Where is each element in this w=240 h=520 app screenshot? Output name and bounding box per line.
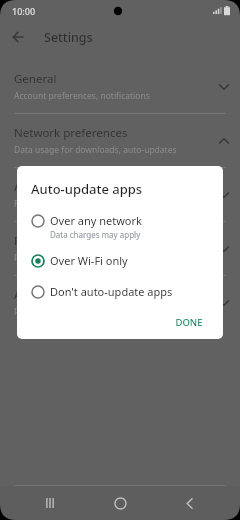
staticText: Network preferences [14,125,128,141]
button[interactable]: Don't auto-update apps [31,279,211,304]
button[interactable]: Over any network [31,208,211,245]
button[interactable]: Back [6,25,30,49]
staticText: Account preferences, notifications [14,90,150,102]
staticText: About [14,287,47,303]
staticText: Auto-update apps [31,180,143,198]
staticText: Parental control, parent guide [14,252,134,264]
staticText: Fingerprint, purchase authentication [14,198,161,210]
button[interactable]: Back [170,486,210,520]
staticText: 10:00 [12,5,36,17]
button[interactable]: Home [100,486,140,520]
button[interactable]: DONE [167,312,211,333]
staticText: General [14,71,57,87]
button[interactable]: Network preferences [0,114,240,167]
button[interactable]: Over Wi-Fi only [31,248,211,273]
staticText: Settings [44,29,93,46]
button[interactable]: Recents [30,486,70,520]
staticText: Over any network [50,213,142,228]
staticText: Authentication [14,179,94,195]
staticText: Play Store, build version, device certif… [14,306,189,318]
staticText: Family [14,233,49,249]
staticText: Data charges may apply [50,229,141,240]
button[interactable]: Family [0,222,240,275]
button[interactable]: About [0,276,240,329]
staticText: DONE [175,316,203,329]
button[interactable]: Authentication [0,168,240,221]
staticText: Over Wi-Fi only [50,253,128,268]
button[interactable]: General [0,60,240,113]
staticText: Don't auto-update apps [50,284,173,299]
staticText: Data usage for downloads, auto-updates [14,144,177,156]
